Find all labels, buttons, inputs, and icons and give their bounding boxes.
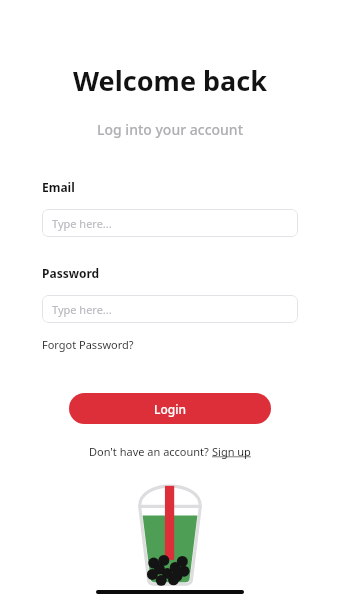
other: Bubble tea illustration <box>126 481 214 589</box>
staticText: Welcome back <box>73 62 267 99</box>
staticText: Log into your account <box>97 120 243 139</box>
button[interactable]: Login <box>69 393 271 424</box>
button[interactable]: Forgot Password? <box>42 337 134 352</box>
staticText: Email <box>42 179 75 195</box>
staticText: Don't have an account? <box>89 444 212 459</box>
staticText: Type here... <box>52 216 112 231</box>
staticText: Forgot Password? <box>42 337 134 352</box>
staticText: Password <box>42 265 100 281</box>
button[interactable]: Sign up <box>212 444 251 459</box>
button[interactable]: Type here... <box>42 295 298 323</box>
staticText: Sign up <box>212 444 251 459</box>
staticText: Type here... <box>52 302 112 317</box>
staticText: Login <box>154 401 186 417</box>
button[interactable]: Type here... <box>42 209 298 237</box>
